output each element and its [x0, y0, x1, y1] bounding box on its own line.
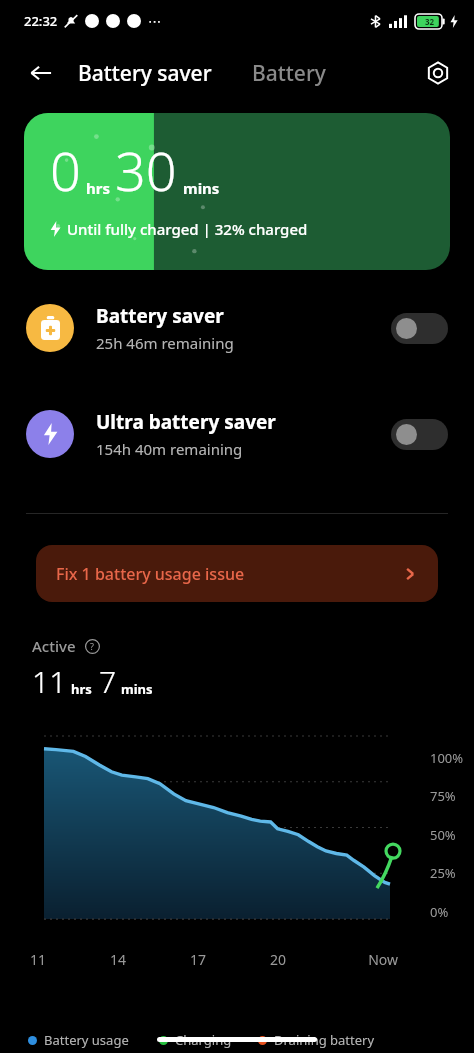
- staticText: ⋯: [148, 14, 161, 29]
- staticText: Fix 1 battery usage issue: [56, 563, 402, 585]
- staticText: Ultra battery saver: [96, 409, 276, 435]
- staticText: 30: [115, 133, 177, 207]
- staticText: 25h 46m remaining: [96, 333, 234, 353]
- staticText: 50%: [430, 826, 456, 844]
- button[interactable]: 0: [24, 113, 450, 270]
- staticText: 0%: [430, 903, 449, 921]
- staticText: Draining battery: [274, 1031, 375, 1049]
- staticText: Charging: [175, 1031, 232, 1049]
- staticText: ?: [90, 640, 94, 652]
- staticText: 22:32: [24, 12, 58, 30]
- button[interactable]: Toggle Ultra battery saver: [391, 419, 448, 450]
- staticText: 75%: [430, 787, 456, 805]
- staticText: 17: [190, 950, 270, 969]
- staticText: 154h 40m remaining: [96, 439, 243, 459]
- staticText: 11: [30, 950, 110, 969]
- button[interactable]: Battery saver: [72, 55, 218, 92]
- staticText: Active: [32, 636, 76, 656]
- staticText: 32: [425, 16, 435, 27]
- staticText: 0: [50, 133, 81, 207]
- staticText: Battery: [252, 59, 326, 88]
- button[interactable]: Fix 1 battery usage issue: [36, 545, 438, 602]
- button[interactable]: Battery saver: [0, 297, 474, 359]
- button[interactable]: Battery: [246, 55, 332, 92]
- staticText: 14: [110, 950, 190, 969]
- button[interactable]: Ultra battery saver: [0, 403, 474, 465]
- button[interactable]: Settings: [416, 51, 460, 95]
- staticText: 11: [32, 661, 67, 702]
- staticText: 100%: [430, 749, 464, 767]
- staticText: hrs: [86, 178, 110, 198]
- staticText: 7: [99, 661, 117, 702]
- staticText: Until fully charged | 32% charged: [67, 219, 308, 239]
- staticText: Now: [350, 950, 398, 969]
- staticText: hrs: [71, 680, 92, 698]
- staticText: Battery saver: [96, 303, 224, 329]
- staticText: Battery saver: [78, 59, 212, 88]
- staticText: 20: [270, 950, 350, 969]
- staticText: 25%: [430, 864, 456, 882]
- staticText: mins: [183, 178, 220, 198]
- staticText: mins: [121, 680, 153, 698]
- button[interactable]: Toggle Battery saver: [391, 313, 448, 344]
- button[interactable]: Help: [83, 637, 101, 655]
- button[interactable]: Back: [18, 50, 64, 96]
- staticText: Battery usage: [44, 1031, 129, 1049]
